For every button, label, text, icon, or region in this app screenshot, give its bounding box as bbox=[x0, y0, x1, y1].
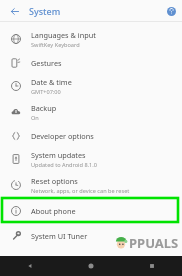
staticText: Backup bbox=[31, 103, 57, 113]
staticText: Updated to Android 8.1.0 bbox=[31, 161, 98, 169]
button[interactable]: System UI Tuner bbox=[0, 223, 182, 249]
button[interactable]: Gestures bbox=[0, 52, 182, 73]
button[interactable]: Help bbox=[160, 0, 182, 22]
button[interactable]: About phone bbox=[0, 198, 182, 223]
staticText: GMT+07:00 bbox=[31, 88, 61, 96]
staticText: Developer options bbox=[31, 131, 94, 141]
staticText: About phone bbox=[31, 206, 76, 216]
button[interactable]: Recent apps bbox=[121, 256, 182, 276]
button[interactable]: Developer options bbox=[0, 125, 182, 146]
staticText: SwiftKey Keyboard bbox=[31, 41, 80, 49]
button[interactable]: Backup bbox=[0, 99, 182, 125]
staticText: System UI Tuner bbox=[31, 231, 88, 241]
staticText: System bbox=[29, 5, 61, 17]
staticText: On bbox=[31, 114, 39, 122]
button[interactable]: Back bbox=[0, 256, 60, 276]
staticText: Date & time bbox=[31, 77, 72, 87]
button[interactable]: Reset options bbox=[0, 172, 182, 198]
button[interactable]: Home bbox=[60, 256, 121, 276]
staticText: Reset options bbox=[31, 176, 78, 186]
staticText: Network, apps, or device can be reset bbox=[31, 187, 130, 195]
staticText: Gestures bbox=[31, 58, 62, 68]
button[interactable]: Navigate up bbox=[0, 0, 29, 22]
staticText: System updates bbox=[31, 150, 86, 160]
button[interactable]: System updates bbox=[0, 146, 182, 172]
button[interactable]: Languages & input bbox=[0, 26, 182, 52]
button[interactable]: Date & time bbox=[0, 73, 182, 99]
staticText: Languages & input bbox=[31, 30, 96, 40]
staticText: PPUALS bbox=[129, 234, 179, 252]
